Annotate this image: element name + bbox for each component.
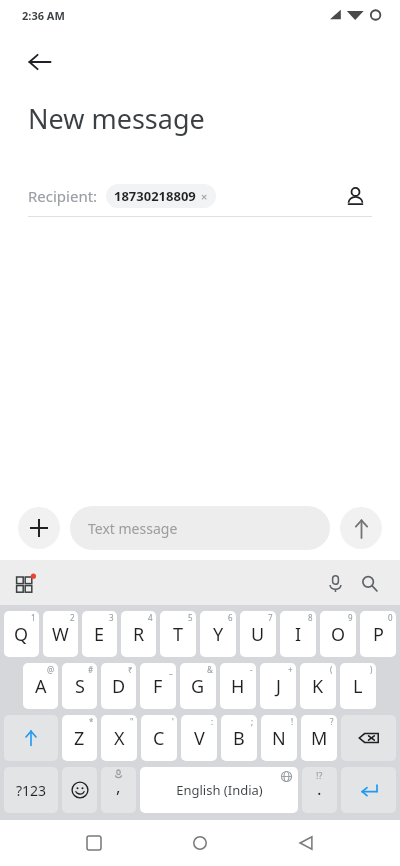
button[interactable]: U [240, 611, 276, 657]
button[interactable]: F [140, 663, 176, 709]
button[interactable]: Keyboard menu [8, 566, 42, 600]
staticText: 1 [31, 612, 36, 623]
button[interactable]: P [360, 611, 396, 657]
staticText: W [52, 622, 69, 647]
staticText: * [89, 716, 94, 727]
button[interactable]: Contacts [338, 179, 372, 213]
staticText: X [114, 726, 125, 751]
button[interactable]: R [121, 611, 156, 657]
staticText: K [312, 674, 324, 699]
button[interactable]: S [62, 663, 97, 709]
staticText: 4 [148, 612, 153, 623]
button[interactable]: D [101, 663, 136, 709]
staticText: Y [213, 622, 224, 647]
button[interactable]: L [340, 663, 376, 709]
staticText: O [331, 622, 346, 647]
staticText: _ [169, 664, 173, 675]
staticText: English (India) [176, 781, 263, 799]
button[interactable]: ?123 [4, 767, 58, 813]
button[interactable]: I [280, 611, 316, 657]
staticText: 0 [388, 612, 393, 623]
staticText: 5 [188, 612, 193, 623]
button[interactable]: Add attachment [18, 507, 60, 549]
staticText: ; [251, 716, 254, 727]
button[interactable]: , [101, 767, 136, 813]
button[interactable]: O [320, 611, 356, 657]
staticText: L [353, 674, 363, 699]
staticText: S [75, 674, 85, 699]
button[interactable]: B [221, 715, 257, 761]
button[interactable]: M [301, 715, 337, 761]
staticText: Text message [88, 519, 178, 538]
button[interactable]: Emoji [62, 767, 97, 813]
button[interactable]: J [260, 663, 296, 709]
button[interactable]: E [82, 611, 117, 657]
staticText: N [272, 726, 286, 751]
staticText: A [35, 674, 47, 699]
button[interactable]: Voice input [318, 566, 352, 600]
staticText: H [231, 674, 245, 699]
staticText: J [276, 674, 281, 699]
staticText: C [153, 726, 165, 751]
staticText: D [112, 674, 126, 699]
staticText: F [153, 674, 163, 699]
staticText: ?123 [16, 781, 47, 800]
button[interactable]: Recents [74, 823, 114, 863]
button[interactable]: X [101, 715, 137, 761]
button[interactable]: 18730218809 [106, 184, 216, 208]
button[interactable]: Text message [70, 506, 330, 550]
button[interactable]: . [302, 767, 337, 813]
button[interactable]: T [160, 611, 196, 657]
staticText: Q [14, 622, 29, 647]
button[interactable]: Enter [341, 767, 396, 813]
button[interactable]: Send [340, 507, 382, 549]
button[interactable]: V [181, 715, 217, 761]
staticText: ! [291, 716, 294, 727]
staticText: T [173, 622, 184, 647]
staticText: M [311, 726, 328, 751]
button[interactable]: G [180, 663, 216, 709]
button[interactable]: Y [200, 611, 236, 657]
staticText: Recipient: [28, 186, 98, 206]
button[interactable]: A [23, 663, 58, 709]
staticText: ? [330, 716, 334, 727]
button[interactable]: Back [14, 36, 66, 88]
staticText: Z [74, 726, 85, 751]
button[interactable]: H [220, 663, 256, 709]
button[interactable]: Q [4, 611, 39, 657]
staticText: U [251, 622, 265, 647]
staticText: B [233, 726, 245, 751]
staticText: P [373, 622, 384, 647]
staticText: , [116, 775, 121, 798]
button[interactable]: Search [352, 566, 386, 600]
button[interactable]: N [261, 715, 297, 761]
staticText: 2 [70, 612, 75, 623]
button[interactable]: English (India) [140, 767, 298, 813]
button[interactable]: W [43, 611, 78, 657]
staticText: : [211, 716, 214, 727]
staticText: R [133, 622, 145, 647]
staticText: . [317, 777, 322, 800]
staticText: 7 [268, 612, 273, 623]
staticText: @ [47, 664, 55, 675]
staticText: E [94, 622, 105, 647]
button[interactable]: C [141, 715, 177, 761]
staticText: # [88, 664, 94, 675]
staticText: ( [330, 664, 333, 675]
staticText: 18730218809 [114, 187, 196, 205]
staticText: 8 [308, 612, 313, 623]
staticText: 2:36 AM [22, 8, 65, 23]
button[interactable]: Home [180, 823, 220, 863]
staticText: × [201, 189, 208, 204]
button[interactable]: Backspace [341, 715, 396, 761]
staticText: 6 [228, 612, 233, 623]
button[interactable]: Shift [4, 715, 58, 761]
button[interactable]: K [300, 663, 336, 709]
button[interactable]: Z [62, 715, 97, 761]
staticText: " [130, 716, 134, 727]
staticText: New message [28, 100, 205, 137]
staticText: !? [316, 769, 323, 781]
staticText: 9 [348, 612, 353, 623]
staticText: I [295, 622, 302, 647]
button[interactable]: Back [286, 823, 326, 863]
